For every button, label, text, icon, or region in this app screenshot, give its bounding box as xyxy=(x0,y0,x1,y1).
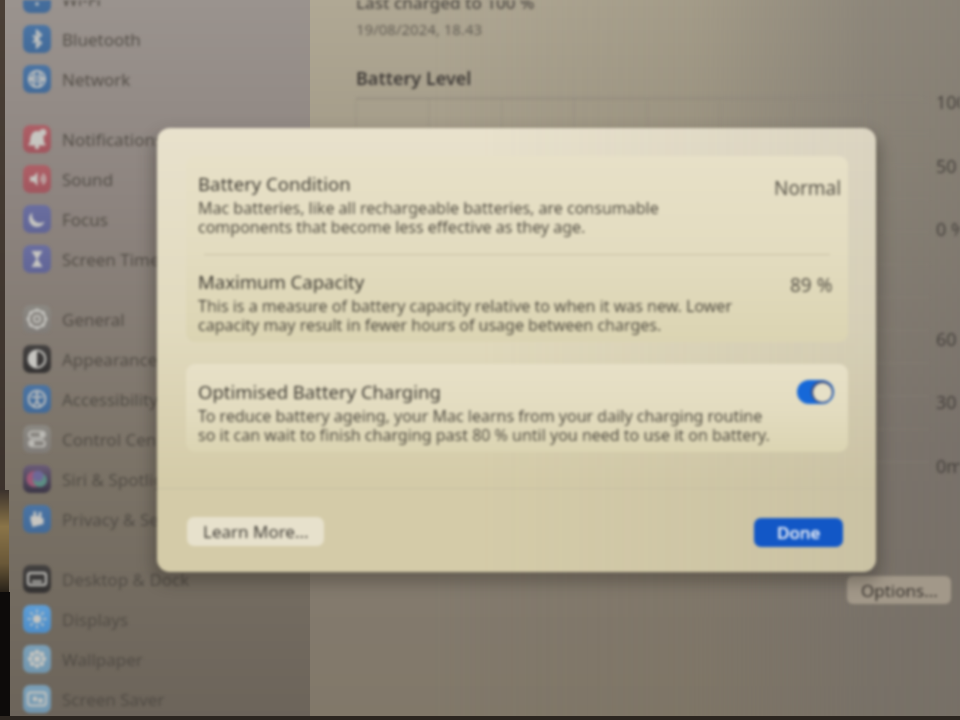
button[interactable]: Wi-Fi xyxy=(23,0,301,14)
staticText: Optimised Battery Charging xyxy=(198,379,441,404)
button[interactable]: Screen Time xyxy=(23,244,301,274)
staticText: 30 xyxy=(936,390,957,415)
staticText: Screen Saver xyxy=(62,688,165,711)
button[interactable]: Displays xyxy=(23,604,301,634)
staticText: To reduce battery ageing, your Mac learn… xyxy=(198,405,763,427)
staticText: Accessibility xyxy=(62,388,158,411)
staticText: Battery Level xyxy=(356,66,472,91)
button[interactable]: Done xyxy=(754,518,843,547)
staticText: 100 xyxy=(936,90,960,115)
staticText: Focus xyxy=(62,208,108,231)
staticText: Learn More... xyxy=(203,520,309,543)
staticText: Desktop & Dock xyxy=(62,568,190,591)
staticText: so it can wait to finish charging past 8… xyxy=(198,424,770,446)
staticText: Mac batteries, like all rechargeable bat… xyxy=(198,197,659,219)
staticText: Appearance xyxy=(62,348,158,371)
button[interactable]: Desktop & Dock xyxy=(23,564,301,594)
staticText: General xyxy=(62,308,125,331)
staticText: Siri & Spotlight xyxy=(62,468,181,491)
staticText: Notifications xyxy=(62,128,164,151)
staticText: capacity may result in fewer hours of us… xyxy=(198,314,662,336)
staticText: Done xyxy=(777,521,821,544)
button[interactable]: Bluetooth xyxy=(23,24,301,54)
button[interactable]: Notifications xyxy=(23,124,301,154)
button[interactable]: Screen Saver xyxy=(23,684,301,714)
staticText: Bluetooth xyxy=(62,28,141,51)
staticText: 50 xyxy=(936,154,957,179)
button[interactable]: Privacy & Security xyxy=(23,504,301,534)
button[interactable]: Optimised Battery Charging toggle xyxy=(797,380,834,404)
staticText: Displays xyxy=(62,608,129,631)
button[interactable]: Siri & Spotlight xyxy=(23,464,301,494)
button[interactable]: Appearance xyxy=(23,344,301,374)
button[interactable]: Learn More... xyxy=(187,517,324,546)
staticText: 60 xyxy=(936,327,957,352)
staticText: Battery Condition xyxy=(198,171,351,196)
staticText: Normal xyxy=(774,175,842,201)
button[interactable]: Control Centre xyxy=(23,424,301,454)
button[interactable]: Focus xyxy=(23,204,301,234)
staticText: 89 % xyxy=(790,272,833,298)
staticText: Sound xyxy=(62,168,114,191)
button[interactable]: General xyxy=(23,304,301,334)
staticText: 0 % xyxy=(936,217,960,242)
staticText: Control Centre xyxy=(62,428,179,451)
staticText: components that become less effective as… xyxy=(198,216,586,238)
staticText: Privacy & Security xyxy=(62,508,204,531)
staticText: This is a measure of battery capacity re… xyxy=(198,295,733,317)
button[interactable]: Options... xyxy=(847,576,951,604)
staticText: Network xyxy=(62,68,131,91)
button[interactable]: Network xyxy=(23,64,301,94)
staticText: Last charged to 100 % xyxy=(356,0,535,14)
staticText: Screen Time xyxy=(62,248,160,271)
staticText: Options... xyxy=(861,579,938,602)
button[interactable]: Accessibility xyxy=(23,384,301,414)
staticText: Maximum Capacity xyxy=(198,269,365,294)
staticText: Wi-Fi xyxy=(62,0,101,11)
staticText: 19/08/2024, 18.43 xyxy=(356,19,483,39)
staticText: Wallpaper xyxy=(62,648,143,671)
button[interactable]: Wallpaper xyxy=(23,644,301,674)
staticText: 0m xyxy=(936,454,960,479)
button[interactable]: Sound xyxy=(23,164,301,194)
